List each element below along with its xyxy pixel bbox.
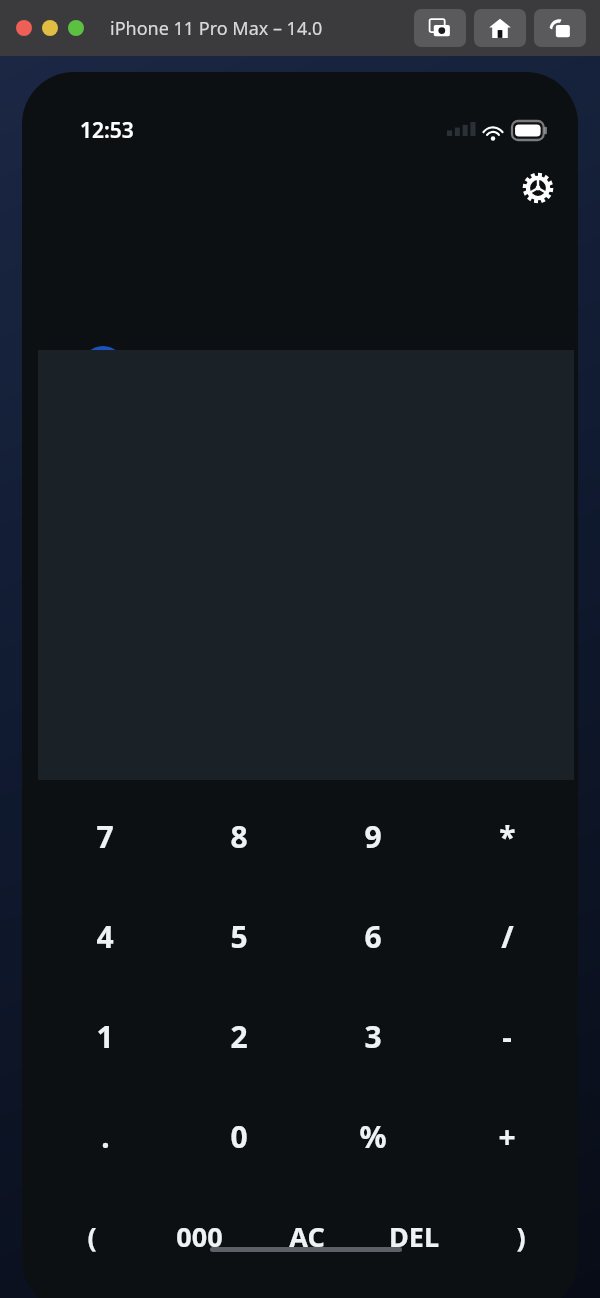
staticText: 7 — [96, 816, 114, 857]
button[interactable]: . — [38, 1086, 172, 1186]
button[interactable] — [42, 20, 58, 36]
button[interactable]: Share — [534, 9, 586, 47]
staticText: - — [502, 1016, 512, 1057]
staticText: / — [501, 916, 514, 957]
staticText: 4 — [96, 916, 114, 957]
button[interactable]: ) — [467, 1186, 574, 1286]
button[interactable]: 5 — [172, 886, 306, 986]
staticText: 1 — [96, 1016, 114, 1057]
button[interactable]: 8 — [172, 786, 306, 886]
staticText: 9 — [364, 816, 382, 857]
staticText: 000 — [176, 1218, 223, 1255]
button[interactable]: + — [440, 1086, 574, 1186]
staticText: 8 — [230, 816, 248, 857]
button[interactable]: AC — [253, 1186, 360, 1286]
staticText: 6 — [364, 916, 382, 957]
button[interactable] — [16, 20, 32, 36]
staticText: iPhone 11 Pro Max – 14.0 — [110, 16, 323, 41]
staticText: % — [359, 1116, 387, 1157]
button[interactable]: 6 — [306, 886, 440, 986]
staticText: . — [101, 1116, 110, 1157]
button[interactable]: 9 — [306, 786, 440, 886]
button[interactable]: Settings — [515, 165, 561, 211]
staticText: * — [499, 816, 516, 857]
staticText: 0 — [230, 1116, 248, 1157]
staticText: 2 — [230, 1016, 248, 1057]
button[interactable]: * — [440, 786, 574, 886]
staticText: AC — [289, 1218, 325, 1255]
button[interactable]: 1 — [38, 986, 172, 1086]
button[interactable]: 4 — [38, 886, 172, 986]
staticText: ) — [516, 1218, 526, 1255]
button[interactable]: Home — [474, 9, 526, 47]
button[interactable]: % — [306, 1086, 440, 1186]
staticText: 3 — [364, 1016, 382, 1057]
staticText: 5 — [230, 916, 248, 957]
button[interactable]: ( — [38, 1186, 146, 1286]
button[interactable]: 000 — [146, 1186, 253, 1286]
button[interactable]: Screenshot — [414, 9, 466, 47]
staticText: ( — [87, 1218, 97, 1255]
button[interactable]: EUR — [60, 336, 260, 398]
button[interactable]: 0 — [172, 1086, 306, 1186]
button[interactable]: / — [440, 886, 574, 986]
button[interactable]: 3 — [306, 986, 440, 1086]
staticText: 12:53 — [80, 116, 134, 145]
button[interactable]: - — [440, 986, 574, 1086]
button[interactable] — [68, 20, 84, 36]
button[interactable]: 2 — [172, 986, 306, 1086]
button[interactable]: 7 — [38, 786, 172, 886]
staticText: DEL — [389, 1218, 439, 1255]
button[interactable]: DEL — [360, 1186, 467, 1286]
staticText: + — [498, 1116, 516, 1157]
